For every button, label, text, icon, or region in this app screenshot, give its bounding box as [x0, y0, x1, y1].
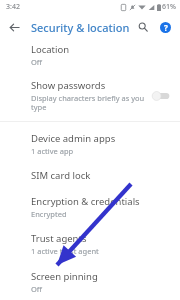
button[interactable]: Device admin apps	[0, 122, 180, 164]
staticText: Off	[31, 57, 43, 67]
staticText: Device admin apps	[31, 132, 116, 145]
button[interactable]: Search	[134, 18, 152, 36]
button[interactable]: SIM card lock	[0, 164, 180, 191]
button[interactable]: Screen pinning	[0, 264, 180, 300]
staticText: Screen pinning	[31, 270, 98, 283]
staticText: Encrypted	[31, 209, 67, 219]
button[interactable]: Encryption & credentials	[0, 191, 180, 227]
staticText: 3:42	[6, 2, 20, 12]
button[interactable]: Help	[156, 18, 174, 36]
staticText: Show passwords	[31, 79, 106, 92]
staticText: Location	[31, 43, 70, 56]
staticText: Trust agents	[31, 232, 87, 245]
button[interactable]: Trust agents	[0, 227, 180, 264]
staticText: 1 active trust agent	[31, 246, 99, 256]
staticText: Display characters briefly as you type	[31, 93, 150, 112]
staticText: SIM card lock	[31, 169, 91, 182]
staticText: ?	[164, 22, 168, 33]
button[interactable]: Back	[5, 18, 23, 36]
staticText: Off	[31, 284, 43, 294]
staticText: Encryption & credentials	[31, 195, 140, 208]
staticText: Security & location	[31, 20, 130, 35]
button[interactable]: Location	[0, 40, 180, 75]
button[interactable]: Show passwords	[0, 75, 180, 118]
staticText: 61%	[162, 2, 176, 12]
staticText: 1 active app	[31, 146, 74, 156]
